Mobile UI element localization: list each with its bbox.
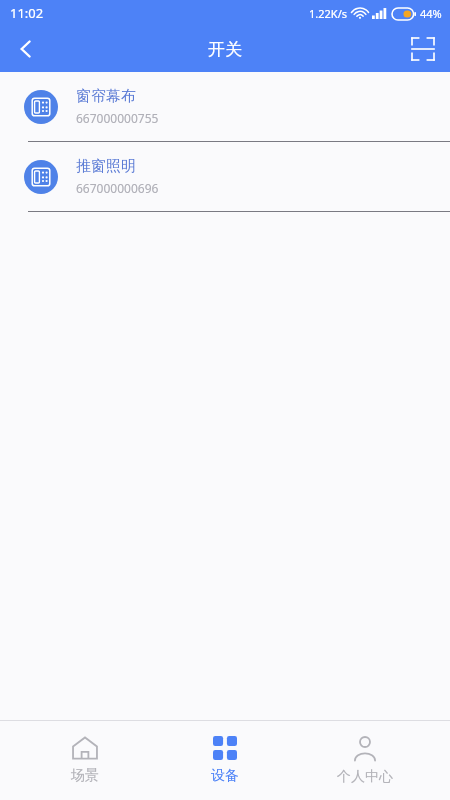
staticText: 个人中心 xyxy=(337,768,393,786)
staticText: 设备 xyxy=(211,767,239,785)
button[interactable]: 设备 xyxy=(170,721,280,800)
staticText: 场景 xyxy=(71,767,99,785)
staticText: 开关 xyxy=(208,39,242,60)
button[interactable]: 场景 xyxy=(30,721,140,800)
staticText: 1.22K/s xyxy=(309,6,347,21)
button[interactable]: Back xyxy=(0,26,52,72)
staticText: 推窗照明 xyxy=(76,157,136,176)
staticText: 667000000755 xyxy=(76,110,159,126)
staticText: 窗帘幕布 xyxy=(76,87,136,106)
staticText: 11:02 xyxy=(10,4,44,22)
button[interactable]: Scan QR code xyxy=(396,26,450,72)
button[interactable]: 推窗照明 xyxy=(0,142,450,212)
staticText: 44% xyxy=(420,6,442,21)
button[interactable]: 个人中心 xyxy=(310,721,420,800)
staticText: 667000000696 xyxy=(76,180,159,196)
button[interactable]: 窗帘幕布 xyxy=(0,72,450,142)
